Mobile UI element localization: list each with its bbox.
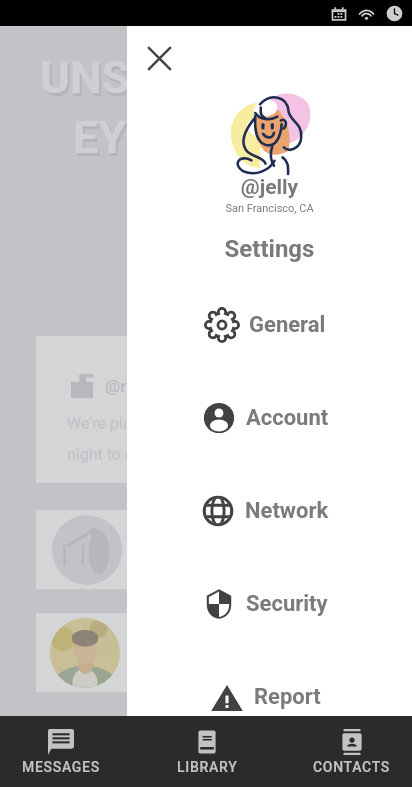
staticText: San Francisco, CA (127, 202, 412, 215)
staticText: Report (254, 684, 321, 710)
staticText: We're playing board games tonight night … (67, 414, 313, 463)
staticText: @randomuser (105, 376, 213, 396)
staticText: Settings (127, 235, 412, 263)
button[interactable]: Account (127, 372, 412, 464)
staticText: General (249, 312, 326, 338)
staticText: Account (246, 405, 329, 431)
button[interactable]: General (127, 279, 412, 371)
button[interactable]: CONTACTS (291, 716, 412, 787)
staticText: @jelly (127, 175, 412, 200)
staticText: UNSEEN EYES (0, 51, 254, 163)
staticText: MESSAGES (22, 759, 100, 775)
staticText: CONTACTS (313, 759, 391, 775)
staticText: Security (246, 591, 328, 617)
button[interactable]: Security (127, 558, 412, 650)
staticText: Network (245, 498, 329, 524)
staticText: LIBRARY (177, 759, 238, 775)
staticText: UNSEEN EYES (0, 54, 256, 166)
button[interactable]: MESSAGES (0, 716, 122, 787)
button[interactable]: LIBRARY (146, 716, 268, 787)
button[interactable]: Close (137, 36, 182, 81)
button[interactable]: Network (127, 465, 412, 557)
button[interactable]: Report (127, 651, 412, 743)
